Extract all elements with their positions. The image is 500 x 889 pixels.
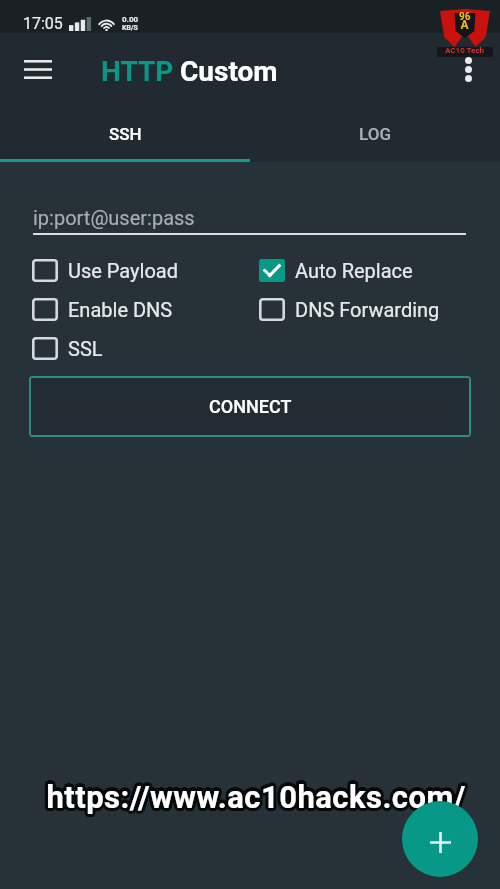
button[interactable]: SSH [0, 105, 250, 162]
button[interactable]: SSL [32, 337, 103, 360]
staticText: Auto Replace [295, 259, 413, 282]
staticText: KB/S [122, 24, 138, 32]
button[interactable]: LOG [250, 105, 500, 162]
button[interactable]: CONNECT [29, 376, 471, 437]
staticText: Custom [180, 55, 278, 88]
button[interactable]: Use Payload [32, 259, 178, 282]
staticText: 17:05 [23, 14, 63, 33]
staticText: Enable DNS [68, 298, 173, 321]
button[interactable]: Auto Replace [259, 259, 413, 282]
staticText: SSH [109, 124, 142, 144]
staticText: SSL [68, 337, 103, 360]
staticText: LOG [359, 124, 391, 144]
staticText: HTTP [101, 55, 174, 88]
staticText: CONNECT [209, 396, 292, 417]
button[interactable]: DNS Forwarding [259, 298, 440, 321]
staticText: DNS Forwarding [295, 298, 440, 321]
staticText: 0.00 [122, 15, 139, 24]
button[interactable]: Add configuration [402, 801, 478, 877]
button[interactable]: More options [446, 47, 490, 91]
staticText: ip:port@user:pass [33, 206, 195, 229]
staticText: Use Payload [68, 259, 178, 282]
button[interactable]: Open navigation menu [14, 45, 62, 93]
button[interactable]: Enable DNS [32, 298, 173, 321]
